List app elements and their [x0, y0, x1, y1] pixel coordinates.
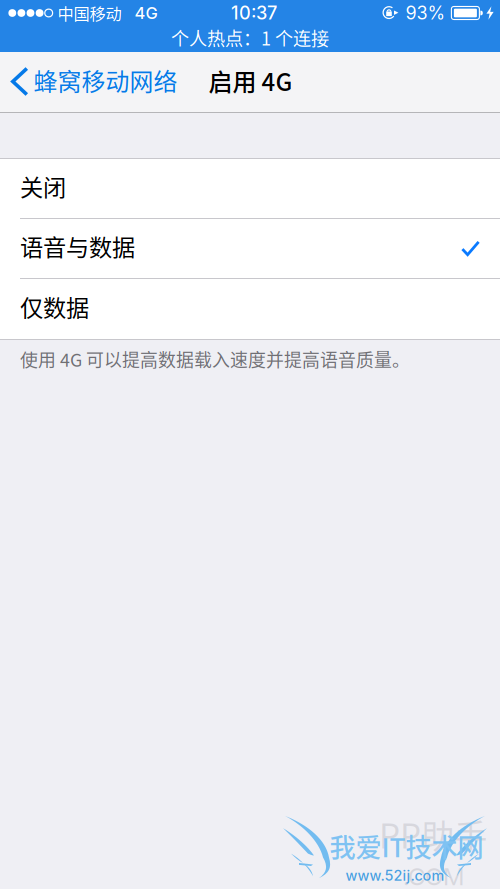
staticText: 4G — [135, 3, 158, 23]
staticText: 蜂窝移动网络 — [34, 63, 178, 97]
button[interactable]: 语音与数据 — [0, 219, 500, 279]
button[interactable]: 蜂窝移动网络 — [0, 53, 178, 111]
staticText: 我爱IT技术网 — [329, 827, 483, 865]
staticText: www.52ij.com — [345, 867, 444, 884]
staticText: PP助手 — [379, 810, 487, 858]
staticText: 中国移动 — [58, 1, 122, 25]
staticText: 语音与数据 — [20, 229, 135, 263]
staticText: 使用 4G 可以提高数据载入速度并提高语音质量。 — [20, 346, 410, 372]
staticText: 启用 4G — [209, 63, 293, 98]
staticText: .COM — [403, 862, 464, 889]
staticText: 个人热点：1 个连接 — [171, 24, 329, 51]
button[interactable]: 仅数据 — [0, 279, 500, 339]
staticText: 关闭 — [20, 169, 66, 203]
staticText: 93% — [405, 2, 445, 24]
button[interactable]: 关闭 — [0, 159, 500, 219]
staticText: 仅数据 — [20, 290, 89, 323]
staticText: 10:37 — [231, 2, 277, 24]
